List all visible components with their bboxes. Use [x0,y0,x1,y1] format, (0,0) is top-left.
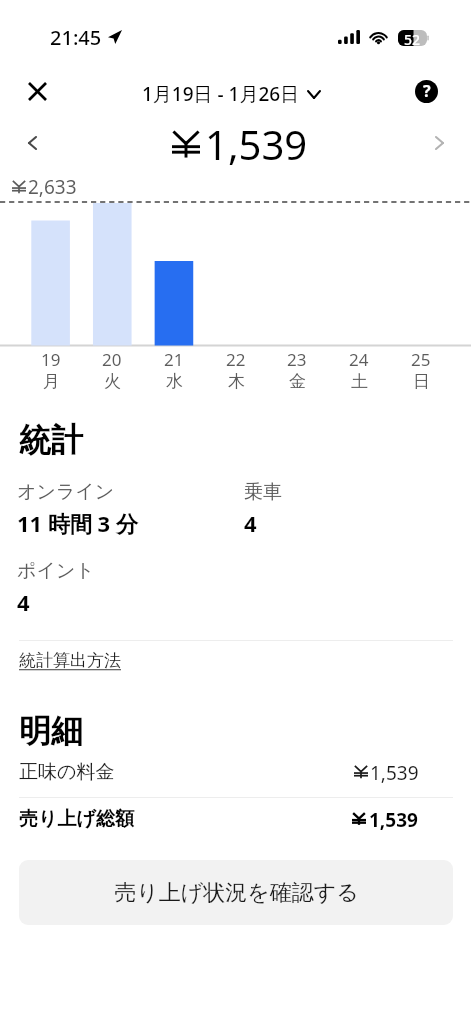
staticText: 11 時間 3 分 [17,508,138,538]
staticText: 21 [164,348,184,371]
staticText: 21:45 [50,24,102,51]
staticText: 土 [351,371,368,392]
staticText: 1,539 [370,760,419,786]
staticText: 22 [226,348,246,371]
staticText: 水 [166,371,183,392]
staticText: 統計 [19,420,83,460]
staticText: 24 [349,348,369,371]
button[interactable]: Next week [423,127,455,159]
staticText: 売り上げ総額 [19,807,134,831]
staticText: 1月19日 - 1月26日 [142,81,300,107]
staticText: 乗車 [244,480,282,504]
button[interactable]: 統計算出方法 [19,650,121,671]
button[interactable]: Previous week [16,127,48,159]
staticText: 20 [102,348,122,371]
staticText: 売り上げ状況を確認する [114,879,359,907]
button[interactable]: Help [403,68,449,114]
staticText: 明細 [19,711,83,751]
staticText: 木 [228,371,245,392]
staticText: 1,539 [205,117,308,169]
staticText: ? [423,80,431,102]
staticText: 正味の料金 [19,760,115,784]
staticText: 日 [413,371,430,392]
staticText: 2,633 [28,174,77,200]
staticText: 52 [404,30,421,46]
button[interactable]: 売り上げ状況を確認する [19,860,453,925]
staticText: 1,539 [369,807,418,833]
staticText: 23 [287,348,307,371]
staticText: オンライン [17,480,115,504]
staticText: ポイント [17,559,95,583]
staticText: 25 [411,348,431,371]
staticText: 月 [43,371,60,392]
staticText: 火 [104,371,121,392]
staticText: 金 [289,371,306,392]
staticText: 19 [41,348,61,371]
staticText: 4 [244,508,257,538]
button[interactable]: 1月19日 - 1月26日 [142,78,320,110]
button[interactable]: Close [14,68,60,114]
staticText: 4 [17,587,30,617]
